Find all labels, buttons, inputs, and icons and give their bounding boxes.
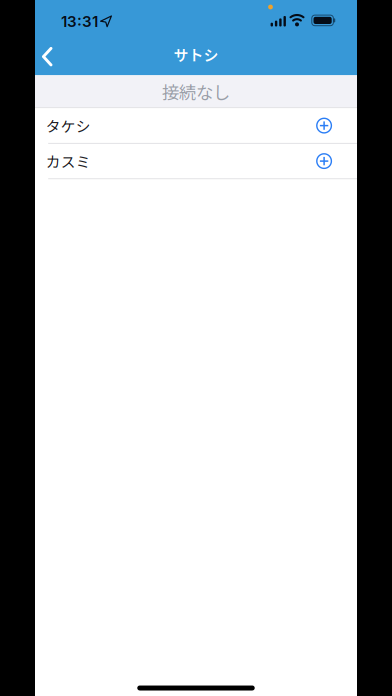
staticText: 接続なし	[162, 79, 230, 104]
staticText: カスミ	[46, 150, 91, 172]
staticText: サトシ	[173, 44, 218, 65]
staticText: タケシ	[46, 115, 91, 136]
staticText: 13:31	[61, 12, 98, 30]
